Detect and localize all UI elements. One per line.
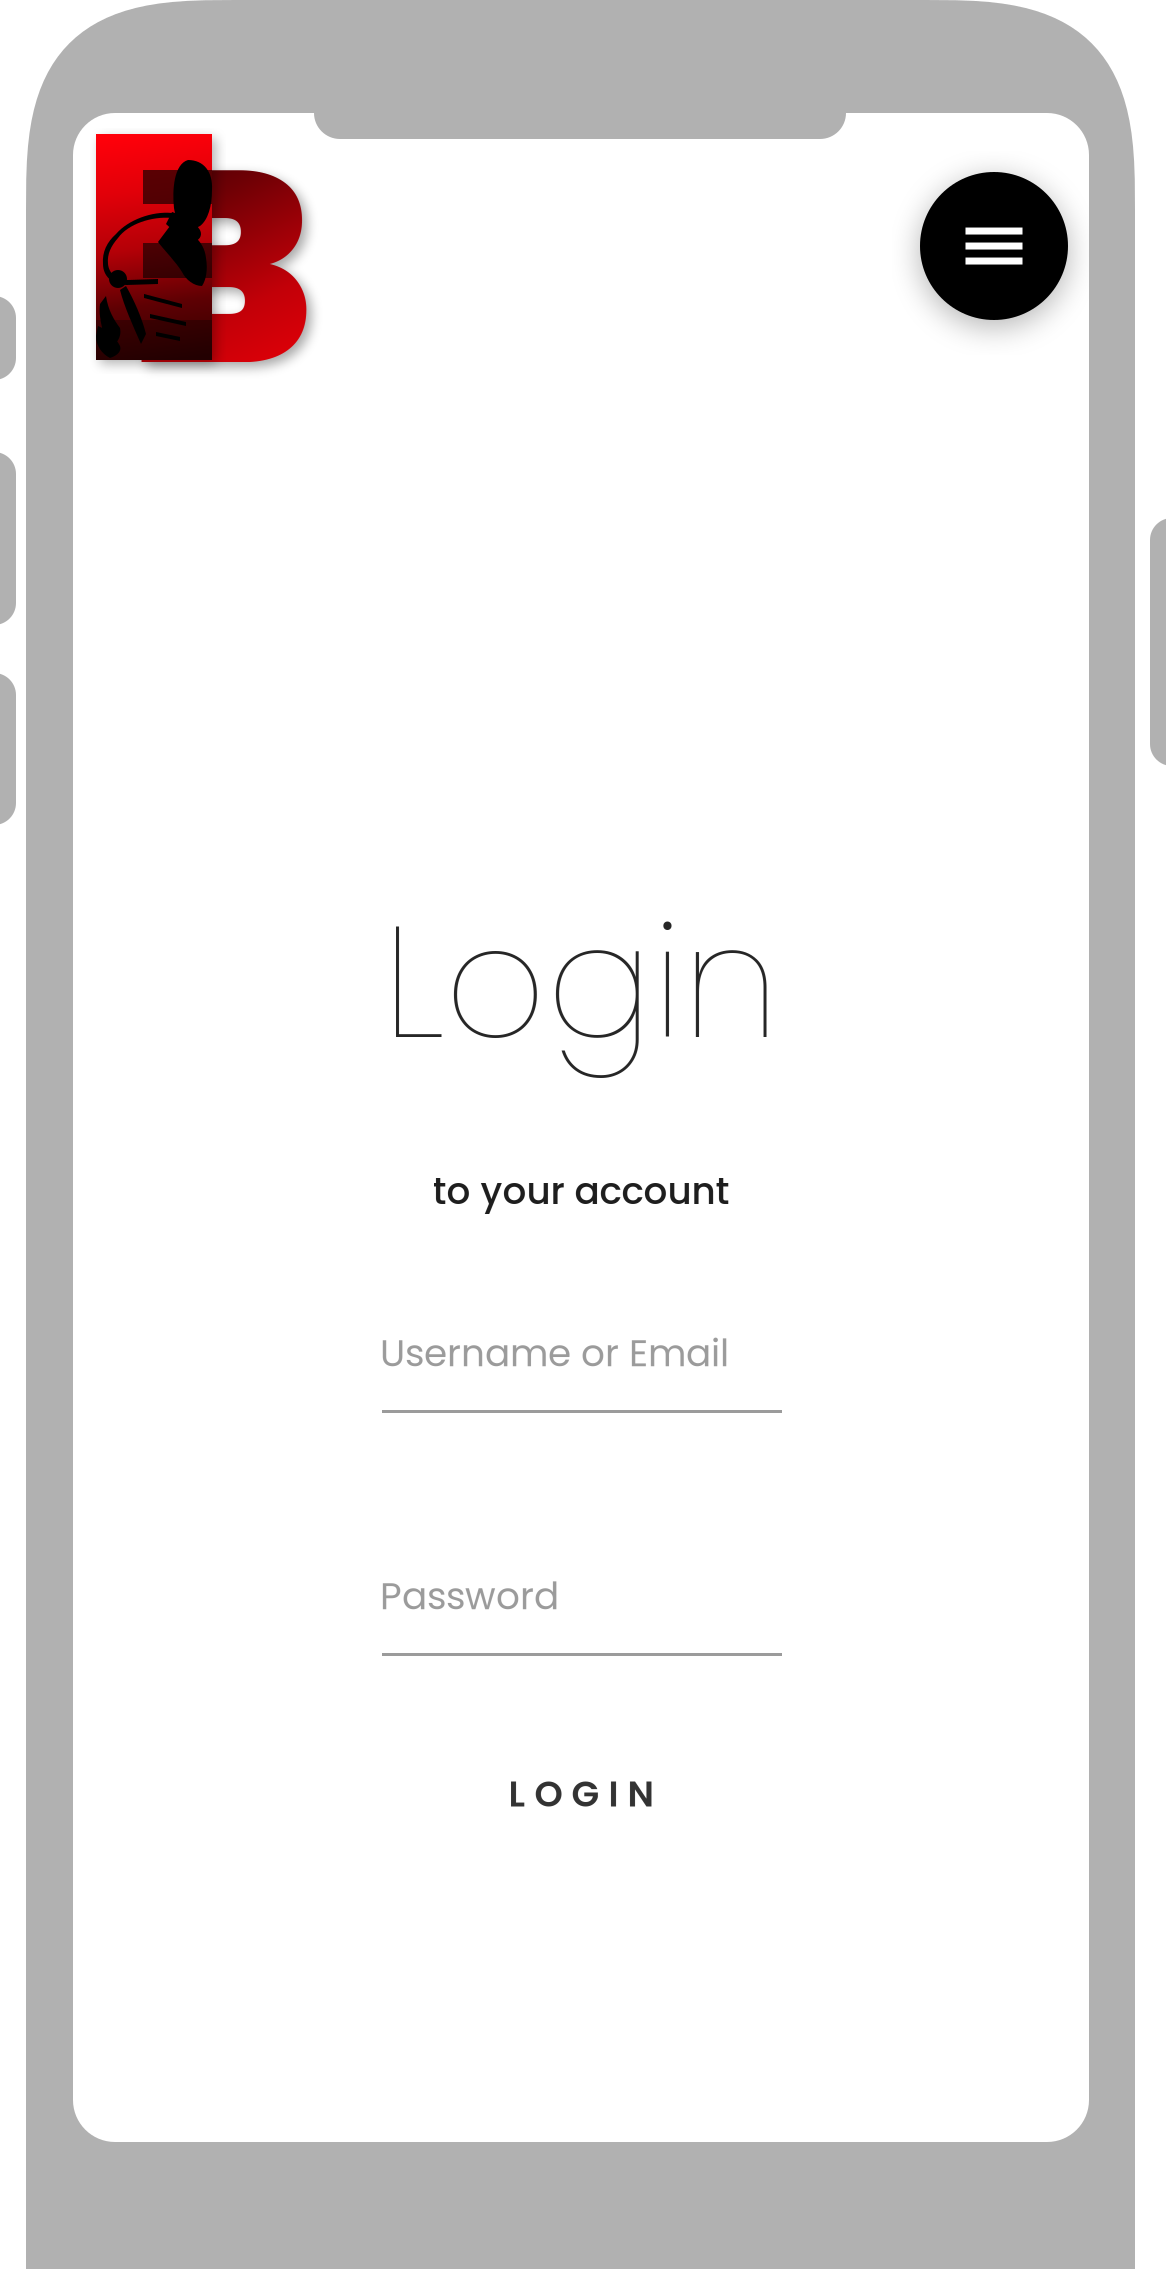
staticText: Login <box>382 872 779 1092</box>
button[interactable]: Password <box>380 1570 778 1658</box>
staticText: LOGIN <box>508 1769 653 1819</box>
staticText: Username or Email <box>380 1327 729 1379</box>
staticText: Password <box>380 1570 559 1622</box>
button[interactable]: LOGIN <box>382 1751 780 1837</box>
button[interactable]: Username or Email <box>380 1327 778 1415</box>
button[interactable]: Menu <box>920 172 1068 320</box>
staticText: to your account <box>432 1165 729 1217</box>
